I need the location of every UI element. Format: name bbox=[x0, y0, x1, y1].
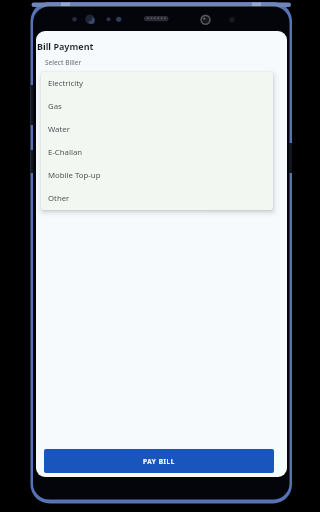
staticText: Gas bbox=[48, 101, 62, 112]
staticText: Select Biller bbox=[45, 58, 82, 67]
staticText: Water bbox=[48, 124, 70, 135]
button[interactable]: Other bbox=[41, 187, 273, 210]
button[interactable]: Electricity bbox=[41, 72, 273, 95]
staticText: Mobile Top-up bbox=[48, 170, 101, 181]
button[interactable]: E-Challan bbox=[41, 141, 273, 164]
staticText: Bill Payment bbox=[37, 40, 94, 52]
button[interactable]: Gas bbox=[41, 95, 273, 118]
button[interactable]: Mobile Top-up bbox=[41, 164, 273, 187]
staticText: Other bbox=[48, 193, 70, 204]
staticText: Electricity bbox=[48, 78, 84, 89]
button[interactable]: PAY BILL bbox=[44, 449, 274, 473]
button[interactable]: Water bbox=[41, 118, 273, 141]
staticText: E-Challan bbox=[48, 147, 83, 158]
staticText: PAY BILL bbox=[143, 457, 175, 466]
